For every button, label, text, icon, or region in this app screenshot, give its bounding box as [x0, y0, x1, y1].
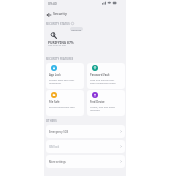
button[interactable]: SIM lock: [46, 140, 125, 153]
button[interactable]: App Lock: [46, 63, 84, 89]
staticText: OTHERS: [46, 119, 57, 122]
button[interactable]: Optimize: [70, 27, 83, 31]
staticText: SECURITY STATUS: [46, 22, 70, 25]
staticText: Find Device: [90, 100, 105, 104]
staticText: Locate, lock and erase remotely: [90, 105, 115, 111]
staticText: More settings: [49, 160, 66, 164]
button[interactable]: Emergency SOS: [46, 125, 125, 138]
staticText: PURIFYING 87%: [48, 40, 74, 44]
button[interactable]: More settings: [46, 155, 125, 168]
staticText: SECURITY FEATURES: [46, 57, 74, 60]
staticText: Last scan 2h ago: [48, 44, 66, 47]
button[interactable]: Password Vault: [87, 63, 125, 89]
staticText: Protect apps with your fingerprint: [49, 78, 75, 84]
staticText: Encrypt important files: [49, 105, 75, 108]
staticText: Save and autofill your login credentials…: [90, 78, 116, 84]
staticText: SIM lock: [49, 145, 60, 149]
staticText: App Lock: [49, 73, 61, 77]
staticText: 09:40: [48, 1, 57, 6]
button[interactable]: Find Device: [87, 90, 125, 116]
button[interactable]: Back: [44, 10, 53, 19]
staticText: Security: [53, 11, 67, 16]
staticText: File Safe: [49, 100, 60, 104]
button[interactable]: File Safe: [46, 90, 84, 116]
staticText: Password Vault: [90, 73, 110, 77]
staticText: Optimize: [71, 28, 82, 31]
staticText: Emergency SOS: [49, 130, 69, 134]
